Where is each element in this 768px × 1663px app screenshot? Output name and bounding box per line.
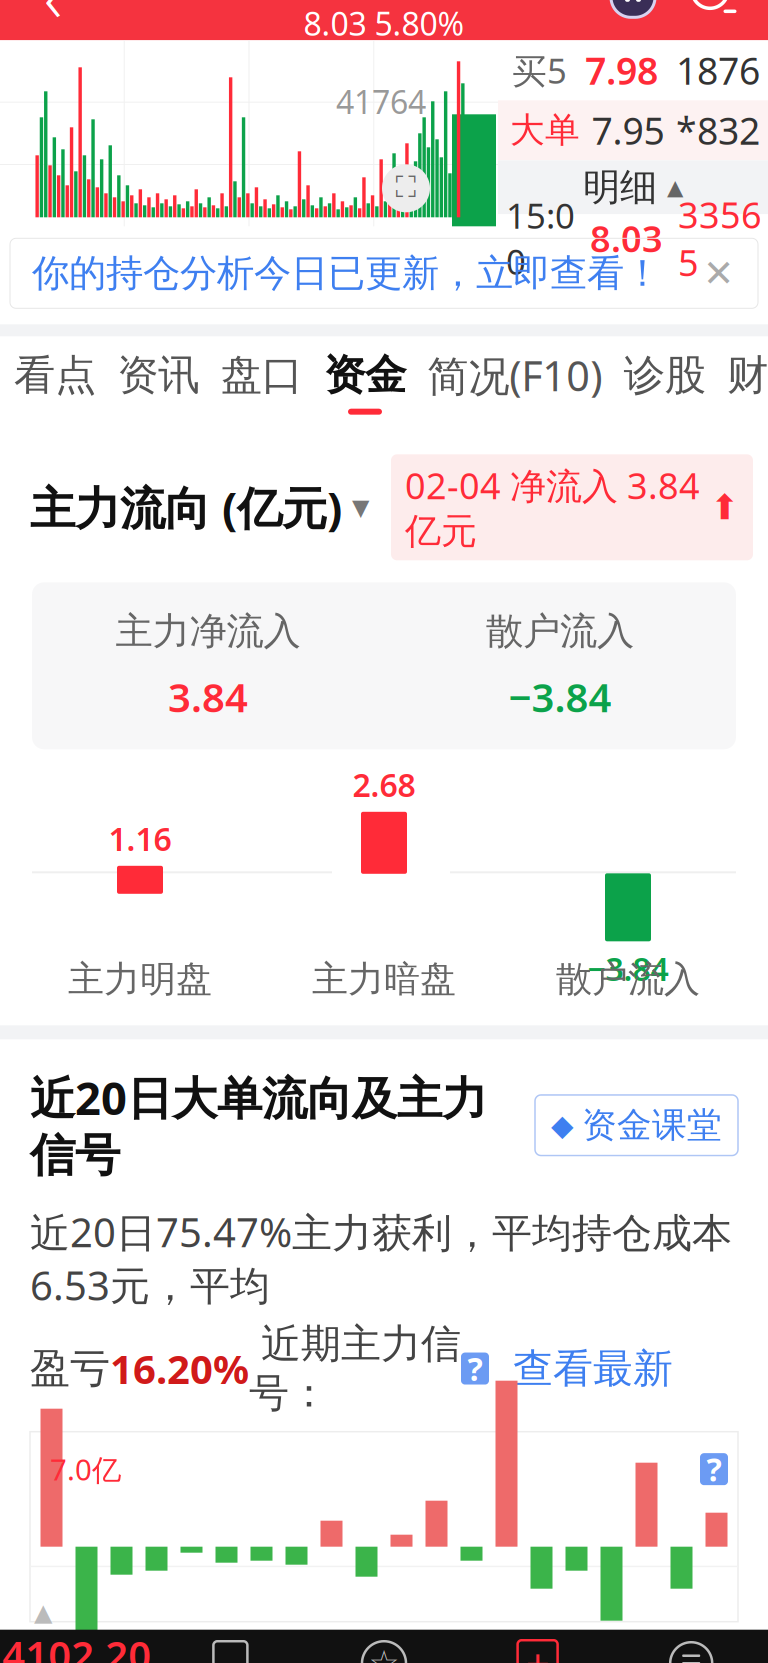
staticText: 简况(F10) [427, 348, 602, 403]
staticText: 看点 [14, 350, 96, 401]
staticText: 资金 [324, 350, 406, 401]
staticText: 02-04 净流入 3.84 亿元 [405, 461, 700, 553]
staticText: 买5 [512, 47, 567, 93]
staticText: 主力明盘 [68, 957, 212, 1001]
staticText: 主力暗盘 [312, 957, 456, 1001]
staticText: 15:00 [506, 192, 575, 284]
staticText: 16.20% [110, 1342, 249, 1395]
staticText: ◆ [551, 1109, 574, 1142]
staticText: ✕ [703, 252, 734, 294]
button[interactable]: 明细 [498, 160, 768, 214]
staticText: 1.16 [108, 817, 171, 860]
staticText: 资金课堂 [582, 1104, 722, 1147]
button[interactable]: ▲ [0, 1599, 154, 1663]
button[interactable]: 搜索 [672, 0, 758, 38]
staticText: 诊股 [624, 350, 706, 401]
staticText: 资讯 [117, 350, 199, 401]
staticText: 你的持仓分析今日已更新，立即查看！ [32, 250, 661, 296]
button[interactable]: 智能助手 [594, 0, 672, 34]
staticText: 近期主力信号： [249, 1319, 461, 1418]
staticText: 3.84 [168, 670, 248, 723]
staticText: 4102.20 [2, 1628, 151, 1663]
button[interactable]: 你的持仓分析今日已更新，立即查看！ [0, 226, 768, 324]
staticText: ? [467, 1347, 482, 1390]
button[interactable]: 资金 [324, 336, 406, 429]
button[interactable]: 财 [727, 336, 768, 429]
staticText: 8.03 5.80% [303, 2, 464, 45]
staticText: ☆ [368, 1643, 399, 1663]
staticText: 1876 [676, 45, 760, 95]
staticText: ▲ [34, 1599, 52, 1626]
button[interactable]: 下单 [154, 1639, 307, 1663]
staticText: 近20日75.47%主力获利，平均持仓成本6.53元，平均 [30, 1205, 732, 1311]
button[interactable]: 主力流向 (亿元) [30, 477, 369, 537]
button[interactable]: 返回 [10, 0, 96, 38]
staticText: *832 [676, 105, 760, 155]
staticText: 散户流入 [486, 608, 634, 654]
staticText: −3.84 [587, 947, 668, 990]
staticText: ⛶ [395, 174, 416, 203]
staticText: 盘口 [221, 350, 303, 401]
button[interactable]: 02-04 净流入 3.84 亿元 [391, 454, 753, 560]
staticText: −3.84 [508, 670, 611, 723]
staticText: 2.68 [352, 763, 415, 806]
staticText: 主力流向 (亿元) [30, 477, 342, 537]
staticText: 主力净流入 [115, 608, 300, 654]
staticText: 散户流入 [556, 957, 700, 1001]
staticText: 近20日大单流向及主力信号 [30, 1067, 487, 1183]
staticText: ? [706, 1448, 721, 1490]
button[interactable]: 看点 [14, 336, 96, 429]
staticText: 7.0亿 [50, 1450, 121, 1489]
button[interactable]: 简况(F10) [427, 334, 602, 431]
staticText: 7.98 [585, 45, 658, 95]
staticText: ⬆ [710, 488, 739, 527]
staticText: 查看最新 [489, 1344, 673, 1393]
button[interactable]: + [461, 1639, 614, 1663]
staticText: ‹ [44, 0, 62, 41]
button[interactable]: 功能 [614, 1639, 768, 1663]
staticText: ▼ [352, 494, 369, 520]
button[interactable]: ☆ [307, 1639, 461, 1663]
staticText: 大单 [510, 109, 580, 152]
staticText: 财 [727, 350, 768, 401]
button[interactable]: 查看最新 [489, 1344, 673, 1393]
staticText: + [526, 1635, 550, 1663]
staticText: 明细 [583, 164, 657, 210]
staticText: 41764 [336, 80, 426, 123]
button[interactable]: ◆ [535, 1095, 738, 1156]
staticText: 8.03 [590, 214, 663, 262]
staticText: ▲ [667, 175, 683, 199]
button[interactable]: 盘口 [221, 336, 303, 429]
staticText: 33565 [678, 190, 762, 286]
button[interactable]: 资讯 [117, 336, 199, 429]
button[interactable]: 诊股 [624, 336, 706, 429]
staticText: 7.95 [591, 105, 664, 155]
staticText: 盈亏 [30, 1344, 110, 1393]
